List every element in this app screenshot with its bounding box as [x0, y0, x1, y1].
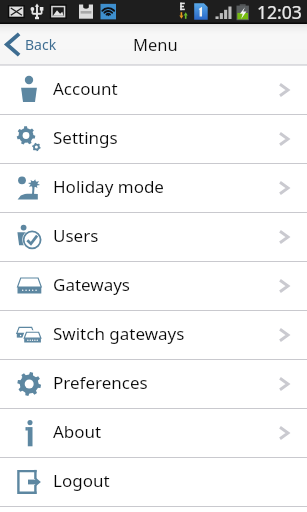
staticText: Account: [53, 77, 118, 100]
staticText: Gateways: [53, 273, 131, 296]
button[interactable]: Users: [0, 213, 307, 261]
button[interactable]: About: [0, 409, 307, 457]
button[interactable]: Account: [0, 66, 307, 114]
button[interactable]: Logout: [0, 458, 307, 506]
button[interactable]: Back: [0, 24, 67, 64]
staticText: Users: [53, 224, 99, 247]
button[interactable]: Holiday mode: [0, 164, 307, 212]
staticText: Switch gateways: [53, 322, 185, 345]
button[interactable]: Preferences: [0, 360, 307, 408]
button[interactable]: Switch gateways: [0, 311, 307, 359]
staticText: Holiday mode: [53, 175, 164, 198]
staticText: Back: [25, 35, 57, 54]
button[interactable]: Settings: [0, 115, 307, 163]
staticText: Settings: [53, 126, 118, 149]
staticText: About: [53, 420, 102, 443]
button[interactable]: Gateways: [0, 262, 307, 310]
staticText: 12:03: [257, 0, 302, 24]
staticText: Menu: [133, 33, 178, 55]
staticText: Logout: [53, 469, 110, 492]
staticText: Preferences: [53, 371, 148, 394]
